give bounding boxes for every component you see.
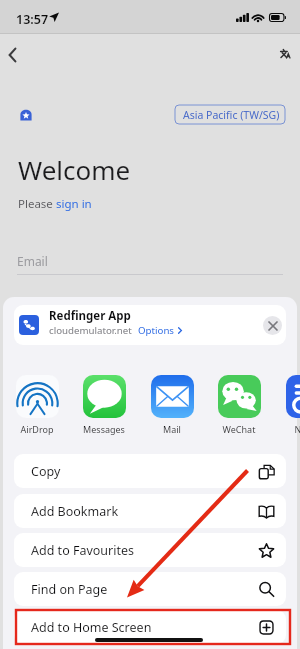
staticText: AirDrop — [15, 423, 59, 435]
staticText: WeChat — [217, 423, 261, 435]
button[interactable]: Options — [138, 324, 182, 337]
staticText: cloudemulator.net — [49, 324, 132, 337]
button[interactable]: Notes — [285, 375, 300, 435]
button[interactable]: AirDrop — [15, 375, 59, 435]
button[interactable]: WeChat — [217, 375, 261, 435]
button[interactable]: Translate page — [270, 37, 300, 69]
staticText: Please — [18, 196, 56, 212]
button[interactable]: Asia Pacific (TW/SG) — [175, 105, 288, 124]
staticText: Notes — [285, 423, 300, 435]
button[interactable]: Add to Home Screen — [14, 610, 286, 644]
button[interactable]: Add to Favourites — [14, 533, 286, 567]
staticText: sign in — [56, 196, 92, 212]
staticText: Welcome — [18, 152, 131, 187]
staticText: Options — [138, 324, 175, 337]
staticText: Copy — [31, 463, 61, 480]
button[interactable]: Copy — [14, 454, 286, 488]
staticText: Asia Pacific (TW/SG) — [183, 108, 280, 122]
button[interactable]: Messages — [82, 375, 126, 435]
button[interactable]: sign in — [56, 196, 92, 212]
staticText: 13:57 — [16, 11, 49, 28]
staticText: Find on Page — [31, 581, 108, 598]
staticText: Messages — [82, 423, 126, 435]
staticText: Add Bookmark — [31, 503, 119, 520]
staticText: Add to Favourites — [31, 542, 135, 559]
staticText: Add to Home Screen — [31, 619, 152, 636]
button[interactable]: Close — [263, 316, 282, 335]
staticText: Mail — [150, 423, 194, 435]
button[interactable]: Back — [0, 39, 29, 71]
staticText: Redfinger App — [49, 308, 131, 324]
button[interactable]: Mail — [150, 375, 194, 435]
staticText: Email — [17, 253, 48, 269]
button[interactable]: Add Bookmark — [14, 494, 286, 528]
button[interactable]: Find on Page — [14, 572, 286, 606]
button[interactable]: Redfinger App — [14, 305, 286, 345]
